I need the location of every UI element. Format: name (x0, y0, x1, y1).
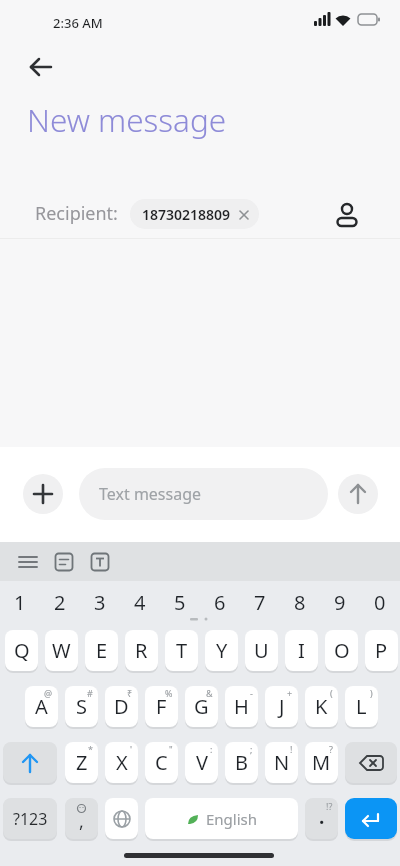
staticText: # (87, 687, 93, 699)
button[interactable]: Y (205, 630, 238, 671)
button[interactable] (105, 798, 138, 839)
button[interactable]: C (145, 742, 178, 783)
button[interactable]: 4 (120, 587, 160, 617)
button[interactable]: Text message (79, 468, 328, 520)
staticText: H (234, 693, 249, 720)
button[interactable]: U (245, 630, 278, 671)
button[interactable] (22, 50, 60, 84)
staticText: @ (44, 687, 53, 699)
staticText: L (356, 693, 367, 720)
staticText: % (165, 687, 173, 699)
button[interactable]: G (185, 686, 218, 727)
staticText: . (319, 804, 325, 830)
button[interactable]: J (265, 686, 298, 727)
staticText: ? (329, 743, 333, 755)
button[interactable]: P (365, 630, 398, 671)
staticText: E (96, 637, 108, 664)
button[interactable]: X (105, 742, 138, 783)
staticText: P (375, 637, 388, 664)
staticText: K (315, 693, 328, 720)
staticText: Q (14, 637, 30, 664)
staticText: " (169, 743, 173, 755)
staticText: I (298, 637, 305, 664)
button[interactable]: V (185, 742, 218, 783)
staticText: 0 (374, 589, 386, 616)
button[interactable]: English (145, 798, 298, 839)
staticText: W (52, 637, 71, 664)
staticText: 1 (14, 589, 26, 616)
staticText: G (194, 693, 209, 720)
button[interactable] (23, 474, 63, 514)
button[interactable]: W (45, 630, 78, 671)
staticText: 3 (94, 589, 106, 616)
button[interactable] (12, 546, 44, 578)
staticText: ! (290, 743, 293, 755)
staticText: ( (330, 687, 333, 699)
button[interactable]: 2 (40, 587, 80, 617)
button[interactable]: O (325, 630, 358, 671)
button[interactable]: ?123 (3, 798, 57, 839)
staticText: 18730218809 (142, 205, 231, 224)
button[interactable] (345, 798, 397, 839)
button[interactable]: 9 (320, 587, 360, 617)
staticText: M (312, 749, 331, 776)
button[interactable] (330, 198, 364, 232)
staticText: Recipient: (35, 201, 118, 226)
staticText: , (79, 809, 84, 834)
button[interactable]: M (305, 742, 338, 783)
button[interactable]: 5 (160, 587, 200, 617)
button[interactable]: D (105, 686, 138, 727)
button[interactable]: 18730218809 (130, 199, 259, 229)
staticText: ; (250, 743, 253, 755)
staticText: J (279, 693, 285, 720)
button[interactable]: !? (305, 798, 338, 839)
button[interactable]: H (225, 686, 258, 727)
staticText: X (116, 749, 128, 776)
staticText: & (206, 687, 213, 699)
staticText: D (114, 693, 129, 720)
button[interactable]: L (345, 686, 378, 727)
button[interactable]: 8 (280, 587, 320, 617)
button[interactable]: T (165, 630, 198, 671)
button[interactable] (338, 474, 378, 514)
staticText: ?123 (13, 808, 48, 830)
staticText: S (76, 693, 87, 720)
staticText: B (235, 749, 248, 776)
button[interactable]: 0 (360, 587, 400, 617)
staticText: 4 (134, 589, 146, 616)
staticText: * (88, 743, 93, 755)
button[interactable]: , (65, 798, 98, 839)
button[interactable]: S (65, 686, 98, 727)
button[interactable] (84, 546, 116, 578)
staticText: Z (76, 749, 88, 776)
button[interactable]: 6 (200, 587, 240, 617)
staticText: U (254, 637, 269, 664)
button[interactable]: 1 (0, 587, 40, 617)
button[interactable]: E (85, 630, 118, 671)
button[interactable]: F (145, 686, 178, 727)
staticText: New message (27, 98, 227, 141)
staticText: 8 (294, 589, 306, 616)
button[interactable]: K (305, 686, 338, 727)
button[interactable]: I (285, 630, 318, 671)
staticText: ) (370, 687, 373, 699)
button[interactable]: N (265, 742, 298, 783)
button[interactable] (48, 546, 80, 578)
staticText: !? (326, 800, 333, 812)
staticText: English (206, 809, 258, 829)
button[interactable]: B (225, 742, 258, 783)
button[interactable]: 3 (80, 587, 120, 617)
staticText: : (210, 743, 213, 755)
staticText: 5 (174, 589, 186, 616)
button[interactable]: Z (65, 742, 98, 783)
button[interactable] (3, 742, 57, 783)
button[interactable]: 7 (240, 587, 280, 617)
button[interactable] (345, 742, 397, 783)
button[interactable]: A (25, 686, 58, 727)
staticText: N (274, 749, 290, 776)
button[interactable]: R (125, 630, 158, 671)
staticText: V (196, 749, 208, 776)
button[interactable]: Q (5, 630, 38, 671)
staticText: 2:36 AM (53, 14, 103, 32)
staticText: 6 (214, 589, 226, 616)
